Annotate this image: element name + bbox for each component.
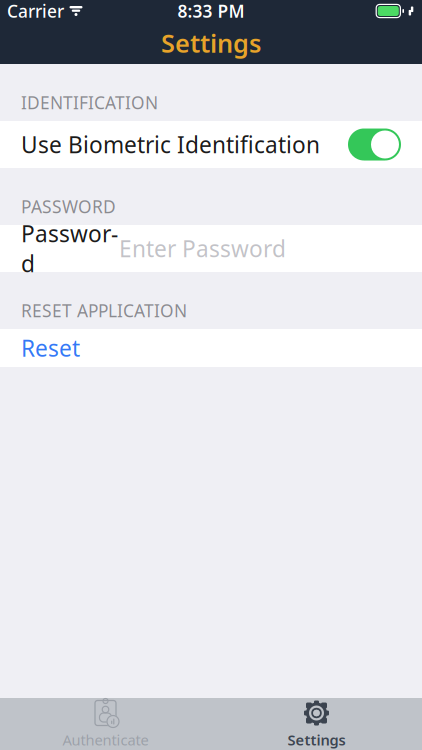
- staticText: IDENTIFICATION: [21, 91, 158, 114]
- button[interactable]: Authenticate: [0, 699, 211, 750]
- staticText: Reset: [21, 333, 80, 363]
- staticText: Enter Password: [119, 233, 286, 263]
- button[interactable]: Use Biometric Identification: [0, 121, 422, 168]
- staticText: RESET APPLICATION: [21, 299, 187, 322]
- staticText: Carrier: [7, 0, 64, 22]
- staticText: Settings: [287, 730, 345, 749]
- staticText: PASSWORD: [21, 195, 116, 218]
- staticText: Authenticate: [62, 730, 148, 749]
- button[interactable]: Reset: [0, 329, 422, 367]
- button[interactable]: Settings: [211, 699, 422, 750]
- staticText: 8:33 PM: [177, 0, 244, 22]
- staticText: Use Biometric Identification: [21, 129, 320, 159]
- button[interactable]: Password: [0, 225, 422, 272]
- staticText: Password: [21, 218, 118, 279]
- staticText: Settings: [161, 26, 261, 60]
